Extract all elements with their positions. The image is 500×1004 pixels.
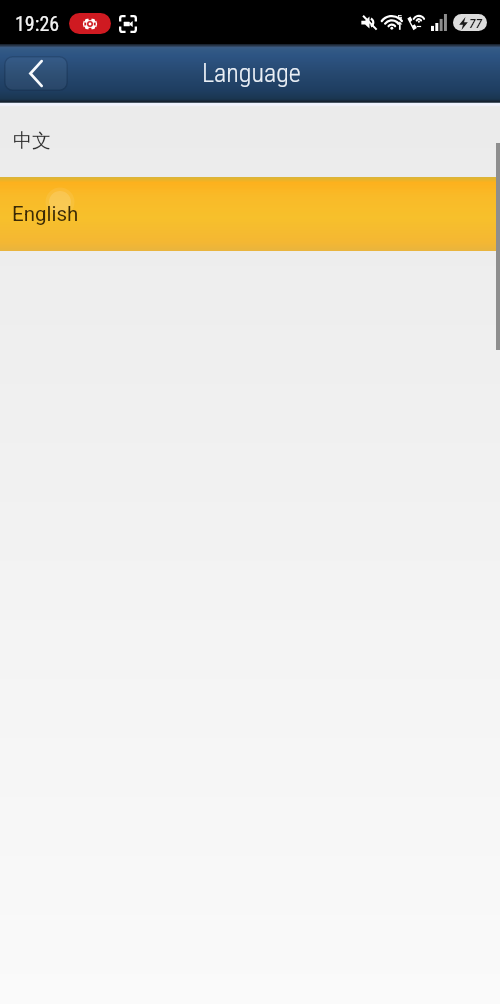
button[interactable]: Back [4,56,68,91]
other: Call signal [407,14,424,31]
button[interactable]: 中文 [0,107,500,177]
staticText: 19:26 [15,12,60,35]
staticText: English [12,202,79,226]
other: Battery 77 percent charging [453,14,487,31]
button[interactable]: English [0,177,500,251]
button[interactable]: Recording [69,13,111,34]
staticText: 77 [469,15,483,31]
staticText: 中文 [13,129,51,153]
other: Screen record [119,15,137,33]
staticText: Language [202,58,301,88]
other: Silent mode [361,14,378,31]
